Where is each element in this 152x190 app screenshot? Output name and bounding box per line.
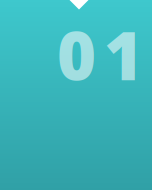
staticText: 01 [57, 10, 143, 98]
button[interactable]: Scroll down [69, 0, 88, 9]
